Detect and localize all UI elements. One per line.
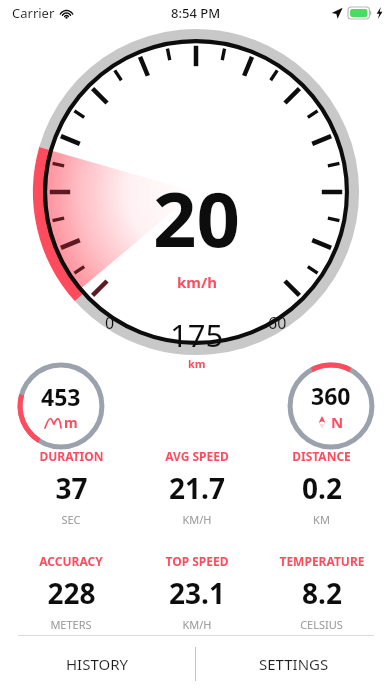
staticText: SETTINGS bbox=[259, 654, 329, 674]
staticText: 8.2 bbox=[302, 574, 342, 612]
button[interactable]: DISTANCE bbox=[259, 448, 384, 527]
staticText: 21.7 bbox=[169, 469, 225, 507]
button[interactable]: HISTORY bbox=[0, 636, 195, 692]
staticText: HISTORY bbox=[66, 654, 129, 674]
staticText: KM/H bbox=[182, 512, 212, 527]
staticText: m bbox=[64, 413, 78, 432]
staticText: ACCURACY bbox=[39, 553, 103, 569]
staticText: 8:54 PM bbox=[171, 4, 221, 22]
staticText: SEC bbox=[61, 512, 81, 527]
staticText: KM bbox=[313, 512, 330, 527]
button[interactable]: AVG SPEED bbox=[134, 448, 259, 527]
staticText: KM/H bbox=[182, 617, 212, 632]
staticText: TOP SPEED bbox=[165, 553, 229, 569]
button[interactable]: SETTINGS bbox=[196, 636, 392, 692]
button[interactable]: TOP SPEED bbox=[134, 553, 259, 632]
staticText: 0.2 bbox=[302, 469, 342, 507]
staticText: N bbox=[331, 412, 344, 432]
staticText: METERS bbox=[50, 617, 92, 632]
staticText: 20 bbox=[153, 166, 240, 270]
button[interactable]: Altitude 453 meters bbox=[17, 362, 105, 450]
staticText: 453 bbox=[41, 381, 81, 412]
staticText: AVG SPEED bbox=[165, 448, 229, 464]
staticText: TEMPERATURE bbox=[279, 553, 365, 569]
button[interactable]: DURATION bbox=[8, 448, 134, 527]
staticText: 23.1 bbox=[169, 574, 225, 612]
staticText: km/h bbox=[177, 272, 217, 292]
button[interactable]: ACCURACY bbox=[8, 553, 134, 632]
button[interactable]: Heading 360 north bbox=[287, 362, 375, 450]
button[interactable]: TEMPERATURE bbox=[259, 553, 384, 632]
staticText: 228 bbox=[47, 574, 96, 612]
staticText: 175 bbox=[170, 314, 224, 356]
staticText: 0 bbox=[105, 312, 115, 334]
staticText: DISTANCE bbox=[292, 448, 351, 464]
staticText: DURATION bbox=[39, 448, 104, 464]
staticText: 60 bbox=[268, 312, 287, 334]
staticText: 37 bbox=[55, 469, 88, 507]
staticText: 360 bbox=[311, 380, 351, 411]
staticText: CELSIUS bbox=[300, 617, 343, 632]
staticText: km bbox=[188, 356, 206, 371]
staticText: Carrier bbox=[12, 4, 55, 22]
